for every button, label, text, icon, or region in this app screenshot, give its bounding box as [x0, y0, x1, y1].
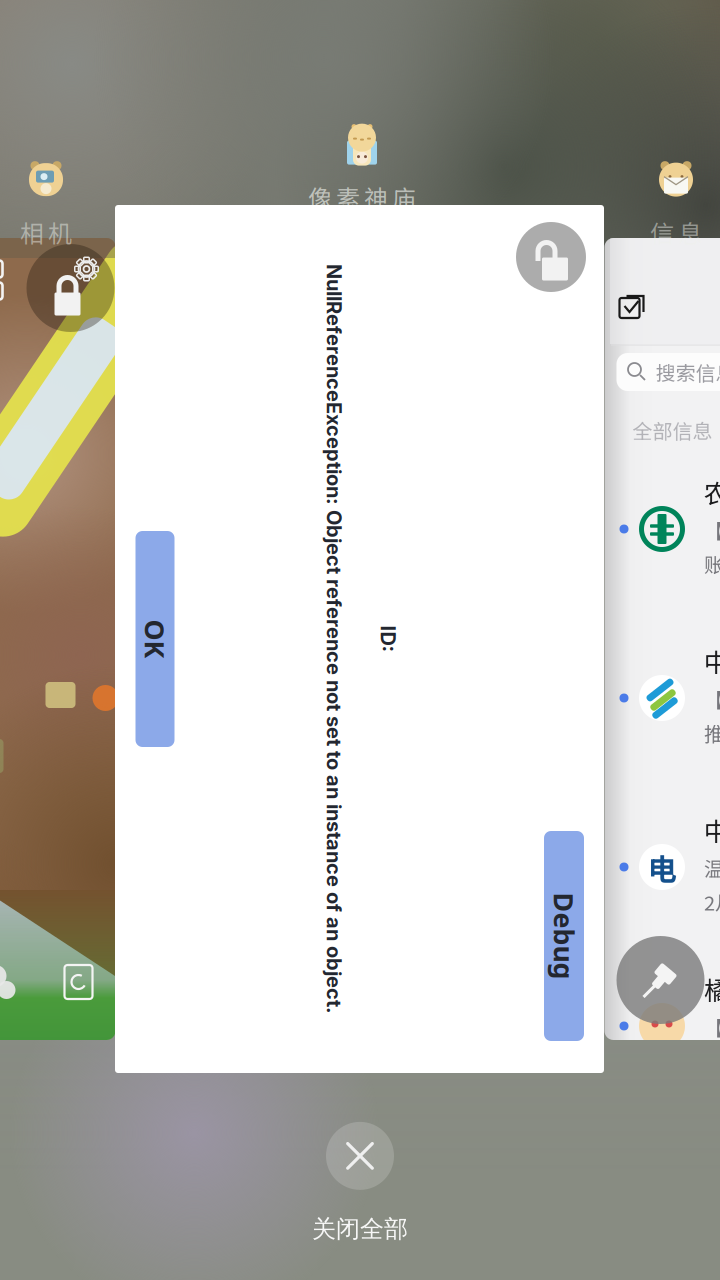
- staticText: 相机: [20, 215, 72, 249]
- staticText: 中国电信: [704, 812, 720, 848]
- button[interactable]: 搜索信息: [616, 353, 720, 391]
- staticText: 信息: [650, 215, 702, 249]
- button[interactable]: Unlock task: [516, 222, 586, 292]
- staticText: 【中国农业银行】: [704, 515, 720, 544]
- staticText: NullReferenceException: Object reference…: [0, 627, 709, 651]
- button[interactable]: 橘子: [608, 973, 720, 1083]
- staticText: 【中国移动】: [704, 684, 720, 713]
- staticText: 搜索信息: [655, 357, 720, 386]
- staticText: 中国移动: [704, 643, 720, 679]
- staticText: 电: [647, 846, 676, 888]
- button[interactable]: 中国移动: [608, 645, 720, 755]
- staticText: 农业银行: [704, 474, 720, 510]
- staticText: 推荐您办理…: [704, 718, 720, 747]
- staticText: 账户变动提醒…: [704, 549, 720, 578]
- staticText: 关闭全部: [312, 1214, 408, 1244]
- button[interactable]: New message: [607, 282, 657, 332]
- staticText: 温馨提示：: [704, 853, 720, 882]
- staticText: 【橘子】: [704, 1012, 720, 1041]
- staticText: Debug: [520, 918, 607, 954]
- button[interactable]: 农业银行: [608, 476, 720, 586]
- button[interactable]: 关闭全部: [312, 1122, 408, 1244]
- staticText: 2月账单已出…: [704, 887, 720, 916]
- staticText: 橘子: [704, 971, 720, 1007]
- button[interactable]: Lock task: [26, 244, 114, 332]
- staticText: 全部信息: [632, 415, 712, 444]
- staticText: ID:: [374, 627, 401, 651]
- button[interactable]: 全部信息: [624, 407, 720, 452]
- button[interactable]: OK: [135, 531, 174, 747]
- staticText: OK: [135, 621, 174, 657]
- button[interactable]: Pin task: [616, 936, 704, 1024]
- button[interactable]: 电: [608, 814, 720, 924]
- staticText: 像素神庙: [308, 180, 416, 214]
- button[interactable]: Debug: [544, 831, 584, 1041]
